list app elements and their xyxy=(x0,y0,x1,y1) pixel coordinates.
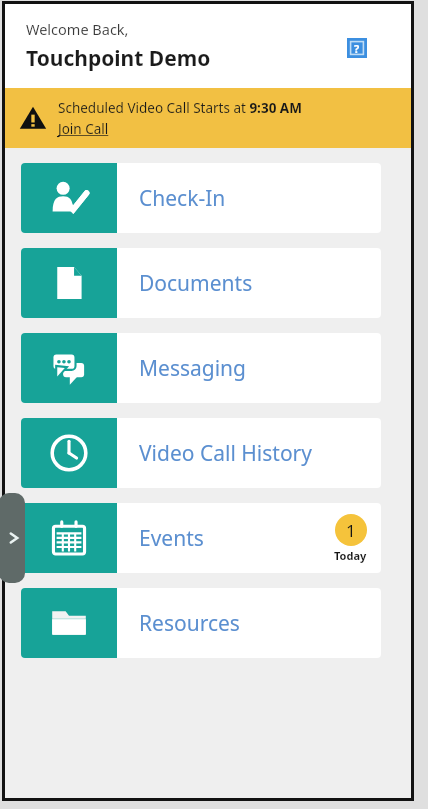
button[interactable]: Check-In xyxy=(21,163,381,233)
button[interactable]: Messaging xyxy=(21,333,381,403)
staticText: ? xyxy=(354,41,360,56)
staticText: Welcome Back, xyxy=(26,19,129,39)
button[interactable]: Scheduled Video Call Starts at 9:30 AM xyxy=(5,88,411,148)
staticText: Events xyxy=(139,524,334,553)
button[interactable]: Video Call History xyxy=(21,418,381,488)
staticText: Documents xyxy=(139,269,381,298)
staticText: Today xyxy=(334,548,367,563)
button[interactable]: Resources xyxy=(21,588,381,658)
button[interactable]: Help xyxy=(347,38,367,58)
button[interactable]: Events xyxy=(21,503,381,573)
staticText: Scheduled Video Call Starts at 9:30 AM xyxy=(58,99,302,117)
staticText: Check-In xyxy=(139,184,381,213)
staticText: Video Call History xyxy=(139,439,381,468)
button[interactable]: Documents xyxy=(21,248,381,318)
staticText: Resources xyxy=(139,609,381,638)
staticText: Join Call xyxy=(58,120,109,138)
staticText: Touchpoint Demo xyxy=(26,44,211,73)
staticText: 1 xyxy=(346,519,356,542)
button[interactable]: Open side panel xyxy=(0,493,25,583)
staticText: Messaging xyxy=(139,354,381,383)
